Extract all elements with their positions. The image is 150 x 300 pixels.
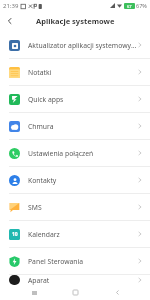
button[interactable]: Chmura	[0, 113, 150, 139]
button[interactable]: Ostatnie	[26, 285, 42, 300]
staticText: Notatki	[28, 68, 137, 77]
button[interactable]: 10	[0, 221, 150, 247]
staticText: 21:39	[3, 2, 19, 10]
staticText: Aplikacje systemowe	[36, 16, 115, 26]
staticText: Ustawienia połączeń	[28, 149, 137, 158]
button[interactable]: Panel Sterowania	[0, 248, 150, 274]
button[interactable]: Aktualizator aplikacji systemowych	[0, 32, 150, 58]
button[interactable]: SMS	[0, 194, 150, 220]
button[interactable]: Notatki	[0, 59, 150, 85]
staticText: Aparat	[28, 276, 137, 285]
staticText: Aktualizator aplikacji systemowych	[28, 41, 137, 50]
staticText: 10	[12, 231, 18, 238]
staticText: Quick apps	[28, 95, 137, 104]
staticText: Kalendarz	[28, 230, 137, 239]
button[interactable]: Ustawienia połączeń	[0, 140, 150, 166]
staticText: 67	[127, 4, 132, 9]
staticText: Panel Sterowania	[28, 257, 137, 266]
staticText: SMS	[28, 203, 137, 212]
button[interactable]: Wstecz	[109, 285, 125, 300]
button[interactable]: Wstecz	[0, 11, 20, 31]
button[interactable]: Aparat	[0, 275, 150, 285]
button[interactable]: Quick apps	[0, 86, 150, 112]
staticText: 67%	[136, 2, 147, 9]
button[interactable]: Ekran główny	[67, 285, 83, 300]
staticText: Chmura	[28, 122, 137, 131]
button[interactable]: Kontakty	[0, 167, 150, 193]
staticText: Kontakty	[28, 176, 137, 185]
